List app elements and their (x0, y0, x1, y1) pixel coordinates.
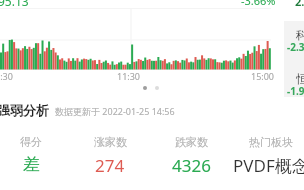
staticText: 数据更新于 2022-01-25 14:56 (55, 105, 175, 117)
staticText: 恒 (296, 71, 304, 86)
staticText: 15:00 (251, 70, 275, 82)
button[interactable]: 热门板块 (226, 135, 304, 177)
staticText: 强弱分析 (0, 102, 49, 118)
staticText: 2.6 (295, 0, 304, 9)
staticText: 274 (95, 154, 125, 177)
staticText: 科 (296, 27, 304, 42)
button[interactable]: 跌家数 (146, 135, 236, 177)
staticText: 跌家数 (175, 135, 208, 149)
button[interactable]: 涨家数 (65, 135, 155, 177)
staticText: -2.3 (287, 40, 304, 54)
button[interactable]: 强弱分析 (0, 102, 175, 118)
staticText: 95.13 (0, 0, 29, 9)
button[interactable]: 得分 (0, 135, 76, 175)
staticText: 热门板块 (249, 135, 293, 149)
button[interactable]: 科 (284, 27, 304, 51)
button[interactable]: 恒 (284, 71, 304, 95)
staticText: PVDF概念 (233, 154, 304, 177)
staticText: -1.9 (287, 84, 304, 98)
staticText: 9:30 (0, 70, 13, 82)
staticText: 涨家数 (94, 135, 127, 149)
staticText: 差 (23, 154, 40, 175)
staticText: 得分 (20, 135, 42, 149)
staticText: 11:30 (117, 70, 141, 82)
staticText: -3.66% (241, 0, 276, 8)
staticText: 4326 (172, 154, 211, 177)
